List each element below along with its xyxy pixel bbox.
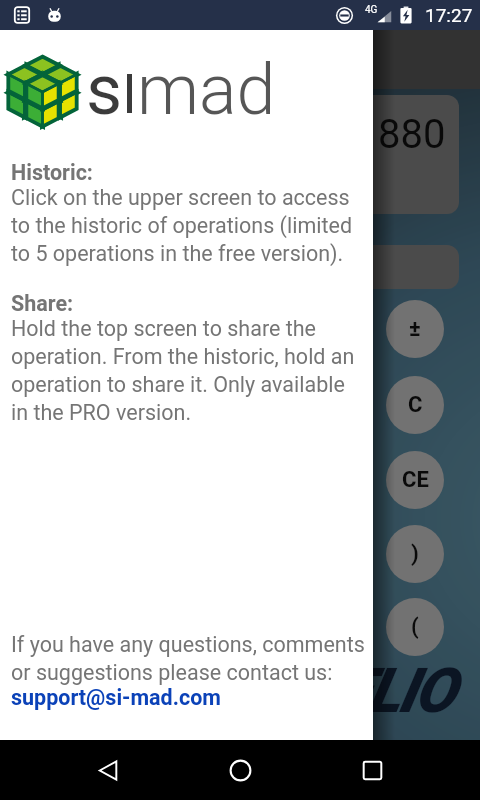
button[interactable]: Home xyxy=(216,746,264,794)
staticText: ± xyxy=(409,316,421,342)
button[interactable]: s xyxy=(0,30,373,740)
button[interactable]: C xyxy=(386,376,444,434)
staticText: support@si-mad.com xyxy=(11,685,221,710)
staticText: 17:27 xyxy=(425,4,473,26)
button[interactable]: CE xyxy=(386,451,444,509)
staticText: mad xyxy=(137,49,276,131)
button[interactable]: ) xyxy=(386,525,444,583)
staticText: Hold the top screen to share the operati… xyxy=(11,316,355,425)
staticText: Share: xyxy=(11,291,74,316)
button[interactable]: ( xyxy=(386,598,444,656)
staticText: s xyxy=(86,49,123,131)
staticText: ) xyxy=(411,541,419,567)
staticText: CE xyxy=(402,467,429,493)
staticText: ELIO xyxy=(337,654,454,727)
button[interactable]: Recents xyxy=(348,746,396,794)
staticText: 880 xyxy=(378,111,446,158)
button[interactable] xyxy=(120,245,459,289)
button[interactable]: Back xyxy=(84,746,132,794)
button[interactable]: support@si-mad.com xyxy=(11,685,221,710)
staticText: ( xyxy=(411,614,419,640)
staticText: C xyxy=(408,392,423,418)
button[interactable]: 880 xyxy=(120,95,459,214)
staticText: Historic: xyxy=(11,160,93,185)
button[interactable]: ± xyxy=(386,300,444,358)
staticText: If you have any questions, comments or s… xyxy=(11,632,365,685)
staticText: 4G xyxy=(365,4,378,16)
staticText: Click on the upper screen to access to t… xyxy=(11,185,353,266)
